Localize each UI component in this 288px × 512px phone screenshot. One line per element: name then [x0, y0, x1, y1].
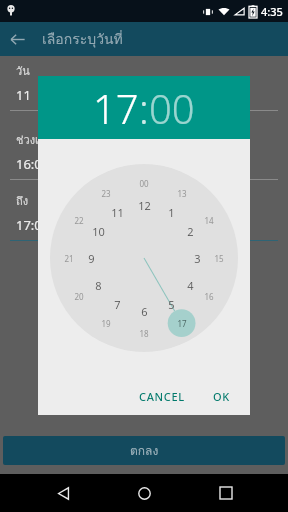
- staticText: 3: [194, 251, 201, 266]
- staticText: 2: [187, 224, 194, 239]
- button[interactable]: ช่วงเวลา: [10, 131, 278, 180]
- staticText: วัน: [16, 62, 30, 79]
- staticText: 21: [64, 253, 74, 264]
- button[interactable]: ถึง: [10, 192, 278, 241]
- staticText: 00: [149, 81, 195, 135]
- button[interactable]: วัน: [10, 62, 278, 111]
- staticText: 12: [138, 198, 151, 213]
- staticText: 11: [111, 205, 124, 220]
- button[interactable]: OK: [207, 385, 236, 408]
- staticText: 16:00: [16, 155, 50, 173]
- staticText: :: [139, 81, 149, 135]
- staticText: 11: [16, 86, 31, 104]
- staticText: 22: [74, 215, 84, 226]
- staticText: 5: [168, 297, 175, 312]
- staticText: 4:35: [261, 4, 283, 19]
- staticText: OK: [213, 389, 230, 404]
- staticText: 19: [101, 318, 111, 329]
- staticText: 18: [139, 328, 149, 339]
- button[interactable]: Back: [44, 474, 82, 512]
- button[interactable]: Recents: [207, 474, 245, 512]
- staticText: 17:00: [16, 216, 50, 234]
- staticText: เลือกระบุวันที่: [42, 28, 123, 50]
- staticText: 14: [204, 215, 214, 226]
- staticText: ถึง: [16, 192, 29, 209]
- staticText: CANCEL: [139, 389, 185, 404]
- button[interactable]: ตกลง: [3, 436, 285, 465]
- button[interactable]: 17: [93, 81, 139, 135]
- staticText: 6: [141, 304, 148, 319]
- staticText: 4: [187, 278, 194, 293]
- staticText: 00: [139, 178, 149, 189]
- button[interactable]: CANCEL: [133, 385, 191, 408]
- staticText: 20: [74, 291, 84, 302]
- staticText: ตกลง: [130, 441, 159, 460]
- staticText: 13: [177, 188, 187, 199]
- staticText: 15: [214, 253, 224, 264]
- button[interactable]: Back: [0, 22, 34, 56]
- staticText: 23: [101, 188, 111, 199]
- staticText: 17: [177, 318, 187, 329]
- staticText: 9: [88, 251, 95, 266]
- staticText: 7: [114, 297, 121, 312]
- staticText: 8: [95, 278, 102, 293]
- staticText: ช่วงเวลา: [16, 131, 58, 148]
- button[interactable]: 00: [149, 81, 195, 135]
- staticText: 10: [92, 224, 105, 239]
- button[interactable]: Home: [125, 474, 163, 512]
- staticText: 16: [204, 291, 214, 302]
- staticText: 17: [93, 81, 139, 135]
- staticText: 1: [168, 205, 175, 220]
